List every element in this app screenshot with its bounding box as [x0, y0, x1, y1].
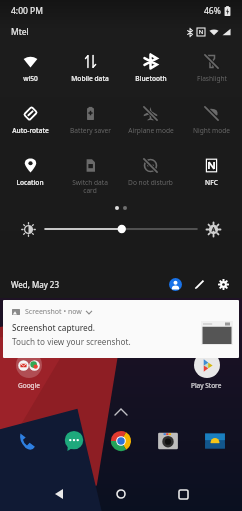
button[interactable]: Switch data card	[60, 150, 120, 202]
button[interactable]: User	[165, 274, 185, 294]
button[interactable]: Back	[39, 477, 79, 511]
staticText: NFC	[205, 178, 218, 187]
button[interactable]: Photos	[202, 428, 228, 454]
button[interactable]: Night mode	[181, 98, 242, 150]
button[interactable]: wl50	[0, 46, 60, 98]
button[interactable]: Auto-rotate	[0, 98, 60, 150]
button[interactable]: Bluetooth	[120, 46, 181, 98]
staticText: Flashlight	[197, 74, 227, 83]
button[interactable]: Do not disturb	[120, 150, 181, 202]
staticText: Wed, May 23	[11, 279, 59, 290]
button[interactable]: Messages	[61, 428, 87, 454]
staticText: Location	[16, 178, 44, 187]
button[interactable]: Flashlight	[181, 46, 242, 98]
staticText: Battery saver	[70, 126, 111, 135]
button[interactable]: Auto brightness	[207, 223, 220, 236]
staticText: Do not disturb	[128, 178, 173, 187]
staticText: wl50	[23, 74, 38, 83]
button[interactable]: NFC	[181, 150, 242, 202]
button[interactable]	[194, 352, 220, 378]
button[interactable]	[16, 352, 42, 378]
staticText: Screenshot captured.	[12, 322, 96, 333]
staticText: 4:00 PM	[11, 5, 43, 17]
staticText: Bluetooth	[135, 74, 167, 83]
button[interactable]	[45, 222, 197, 236]
staticText: Airplane mode	[128, 126, 174, 135]
button[interactable]: Chrome	[108, 428, 134, 454]
button[interactable]: Airplane mode	[120, 98, 181, 150]
staticText: Night mode	[193, 126, 230, 135]
button[interactable]: Camera	[155, 428, 181, 454]
staticText: Mobile data	[71, 74, 109, 83]
button[interactable]: Screenshot • now	[3, 300, 239, 358]
button[interactable]: Battery saver	[60, 98, 120, 150]
staticText: Switch data card	[72, 178, 108, 195]
staticText: Screenshot • now	[25, 307, 82, 317]
button[interactable]: Recents	[163, 477, 203, 511]
staticText: Touch to view your screenshot.	[12, 336, 131, 347]
staticText: Mtel	[11, 26, 29, 38]
staticText: Google	[18, 381, 40, 390]
button[interactable]: Location	[0, 150, 60, 202]
button[interactable]: Mobile data	[60, 46, 120, 98]
staticText: Play Store	[191, 381, 222, 390]
staticText: 46%	[204, 5, 221, 17]
button[interactable]: Edit	[189, 274, 209, 294]
button[interactable]: Phone	[14, 428, 40, 454]
button[interactable]: Home	[101, 477, 141, 511]
button[interactable]: Settings	[213, 274, 233, 294]
staticText: Auto-rotate	[12, 126, 49, 135]
